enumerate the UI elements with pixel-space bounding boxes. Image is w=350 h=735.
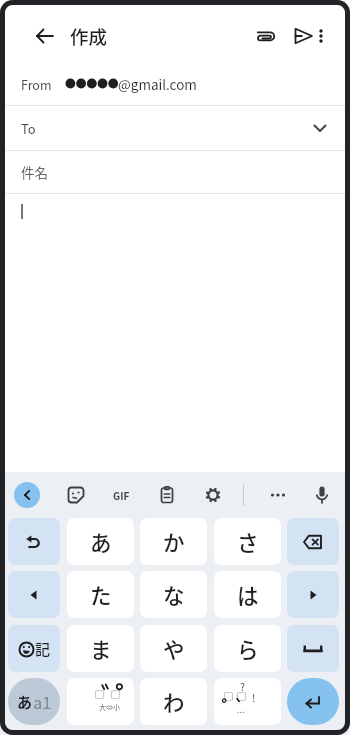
button[interactable]: 記 — [8, 625, 60, 672]
staticText: ! — [252, 690, 256, 704]
button[interactable] — [0, 151, 350, 193]
button[interactable]: か — [140, 518, 207, 565]
staticText: か — [163, 526, 185, 557]
staticText: な — [163, 579, 185, 610]
staticText: @gmail.com — [118, 74, 197, 94]
staticText: ら — [237, 633, 259, 664]
button[interactable] — [8, 518, 60, 565]
button[interactable] — [306, 479, 338, 511]
button[interactable] — [287, 518, 339, 565]
staticText: GIF — [113, 488, 130, 502]
staticText: ま — [90, 633, 112, 664]
button[interactable]: ら — [214, 625, 281, 672]
staticText: あ — [17, 691, 33, 713]
button[interactable] — [8, 571, 60, 618]
staticText: や — [163, 633, 185, 664]
button[interactable] — [151, 479, 183, 511]
button[interactable] — [248, 18, 284, 54]
staticText: た — [90, 579, 112, 610]
button[interactable]: た — [67, 571, 134, 618]
button[interactable]: ま — [67, 625, 134, 672]
button[interactable]: わ — [140, 678, 207, 725]
staticText: 大⇔小 — [99, 702, 120, 712]
button[interactable] — [197, 479, 229, 511]
button[interactable] — [14, 482, 40, 508]
staticText: 件名 — [21, 162, 48, 182]
button[interactable]: 大⇔小 — [67, 678, 134, 725]
staticText: あ — [90, 526, 112, 557]
button[interactable]: さ — [214, 518, 281, 565]
staticText: To — [21, 119, 36, 138]
button[interactable] — [306, 18, 336, 54]
button[interactable]: ? — [214, 678, 281, 725]
button[interactable]: な — [140, 571, 207, 618]
button[interactable] — [0, 62, 350, 105]
staticText: ... — [237, 703, 245, 716]
staticText: は — [237, 579, 259, 610]
button[interactable] — [60, 479, 92, 511]
button[interactable]: あ — [8, 678, 60, 725]
button[interactable] — [0, 106, 350, 150]
button[interactable] — [287, 678, 339, 725]
staticText: ? — [240, 679, 245, 693]
staticText: 作成 — [70, 23, 108, 50]
button[interactable]: は — [214, 571, 281, 618]
button[interactable]: あ — [67, 518, 134, 565]
staticText: a1 — [33, 690, 52, 714]
staticText: 記 — [35, 638, 51, 660]
button[interactable] — [287, 571, 339, 618]
staticText: わ — [163, 686, 185, 717]
button[interactable] — [287, 625, 339, 672]
button[interactable] — [285, 18, 321, 54]
staticText: From — [21, 75, 52, 93]
button[interactable] — [262, 479, 294, 511]
button[interactable] — [27, 18, 63, 54]
button[interactable]: や — [140, 625, 207, 672]
staticText: さ — [237, 526, 259, 557]
